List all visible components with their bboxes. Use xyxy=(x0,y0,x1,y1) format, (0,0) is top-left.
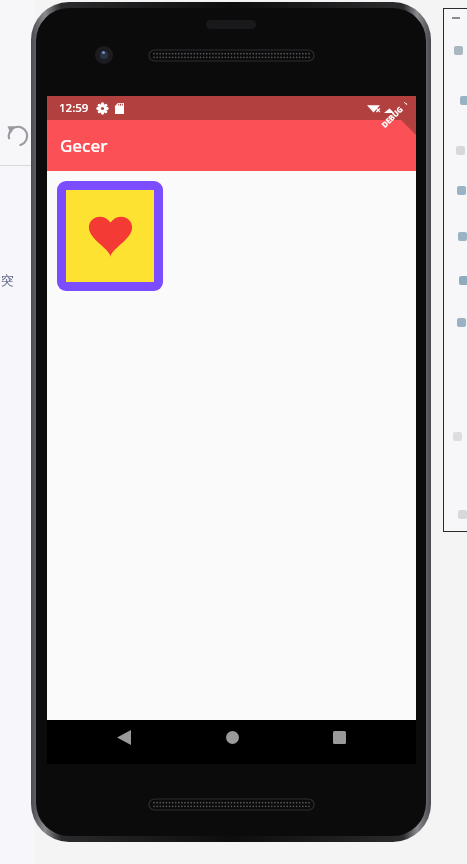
staticText: 12:59 xyxy=(59,100,89,116)
button[interactable] xyxy=(57,181,163,291)
staticText: Gecer xyxy=(60,134,108,157)
staticText: 突 xyxy=(1,272,14,288)
button[interactable]: Back xyxy=(94,720,154,754)
staticText: DEBUG xyxy=(379,104,405,130)
button[interactable]: Rerun xyxy=(6,124,30,148)
button[interactable]: Recent apps xyxy=(309,720,369,754)
button[interactable]: Home xyxy=(202,720,262,754)
